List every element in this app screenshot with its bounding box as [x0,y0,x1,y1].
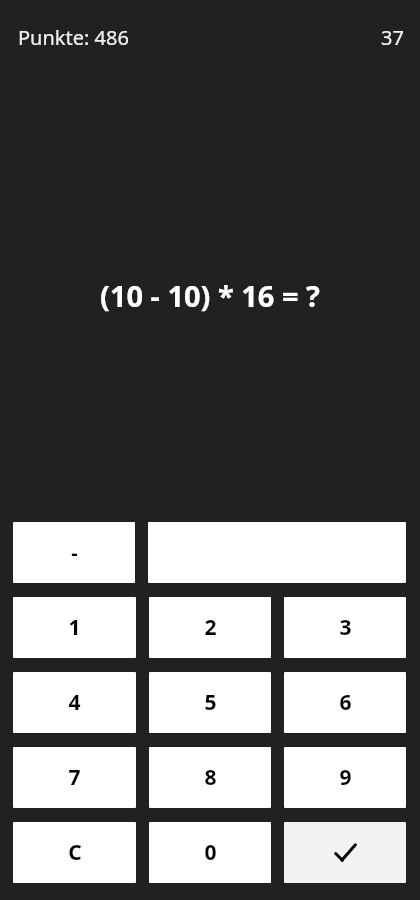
button[interactable]: 9 [284,747,406,808]
staticText: 7 [68,763,81,792]
staticText: 9 [339,763,352,792]
staticText: 37 [381,24,404,51]
staticText: 3 [339,613,352,642]
button[interactable]: Submit answer [284,822,406,883]
staticText: - [71,539,78,566]
staticText: Punkte: 486 [18,24,129,51]
staticText: 6 [339,688,352,717]
button[interactable]: 2 [149,597,271,658]
button[interactable]: 1 [13,597,136,658]
button[interactable]: C [13,822,136,883]
button[interactable]: 6 [284,672,406,733]
staticText: 2 [204,613,217,642]
staticText: 0 [204,838,217,867]
button[interactable]: 5 [149,672,271,733]
button[interactable]: 8 [149,747,271,808]
staticText: 4 [68,688,81,717]
staticText: C [68,838,82,867]
staticText: 8 [204,763,217,792]
button[interactable]: 4 [13,672,136,733]
staticText: (10 - 10) * 16 = ? [100,276,320,315]
button[interactable]: 7 [13,747,136,808]
button[interactable]: - [13,522,135,583]
staticText: 5 [204,688,217,717]
button[interactable]: 0 [149,822,271,883]
staticText: 1 [68,613,81,642]
button[interactable]: 3 [284,597,406,658]
